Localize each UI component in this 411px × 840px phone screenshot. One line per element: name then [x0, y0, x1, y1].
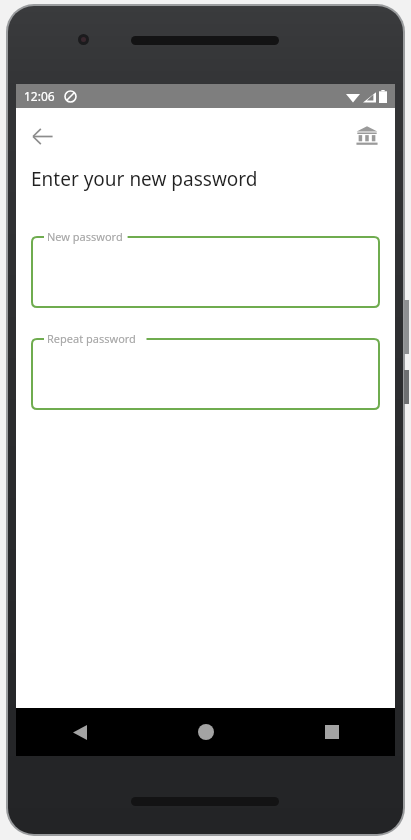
button[interactable]: Bank — [345, 114, 389, 158]
button[interactable]: New password — [31, 228, 380, 308]
button[interactable]: Recent apps — [269, 708, 395, 756]
button[interactable]: Home — [143, 708, 269, 756]
staticText: 12:06 — [24, 88, 55, 104]
button[interactable]: Back — [16, 708, 143, 756]
staticText: Enter your new password — [31, 166, 258, 192]
staticText: New password — [47, 229, 123, 244]
button[interactable]: Back — [20, 114, 64, 158]
button[interactable]: Repeat password — [31, 330, 380, 410]
staticText: Repeat password — [47, 331, 136, 346]
